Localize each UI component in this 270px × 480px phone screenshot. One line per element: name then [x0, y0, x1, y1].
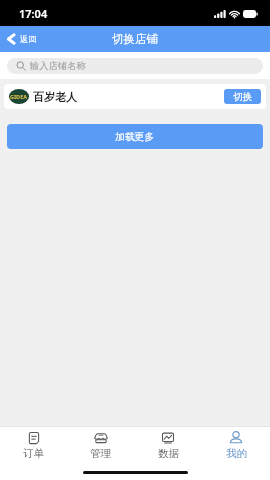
staticText: 17:04	[19, 6, 48, 21]
staticText: 加载更多	[115, 131, 155, 143]
button[interactable]: Search store name	[7, 58, 263, 74]
staticText: 管理	[90, 447, 111, 460]
button[interactable]: 加载更多	[7, 124, 263, 149]
button[interactable]: 返回	[0, 26, 45, 52]
staticText: 百岁老人	[33, 90, 77, 104]
button[interactable]: Management	[67, 427, 134, 464]
staticText: 输入店铺名称	[30, 60, 86, 72]
button[interactable]: Orders	[0, 427, 67, 464]
staticText: 切换	[233, 91, 252, 103]
staticText: 切换店铺	[112, 32, 158, 46]
staticText: 订单	[23, 447, 44, 460]
button[interactable]: 切换	[224, 89, 261, 104]
staticText: GIDEA	[10, 93, 28, 100]
other: Data	[161, 431, 175, 445]
other: Management	[94, 431, 108, 445]
button[interactable]: Data	[134, 427, 202, 464]
button[interactable]: GIDEA	[4, 84, 266, 109]
other: Profile	[229, 431, 243, 445]
button[interactable]: Profile	[202, 427, 270, 464]
staticText: 数据	[158, 447, 179, 460]
staticText: 我的	[226, 447, 247, 460]
other: Orders	[27, 431, 41, 445]
staticText: 返回	[20, 34, 37, 44]
